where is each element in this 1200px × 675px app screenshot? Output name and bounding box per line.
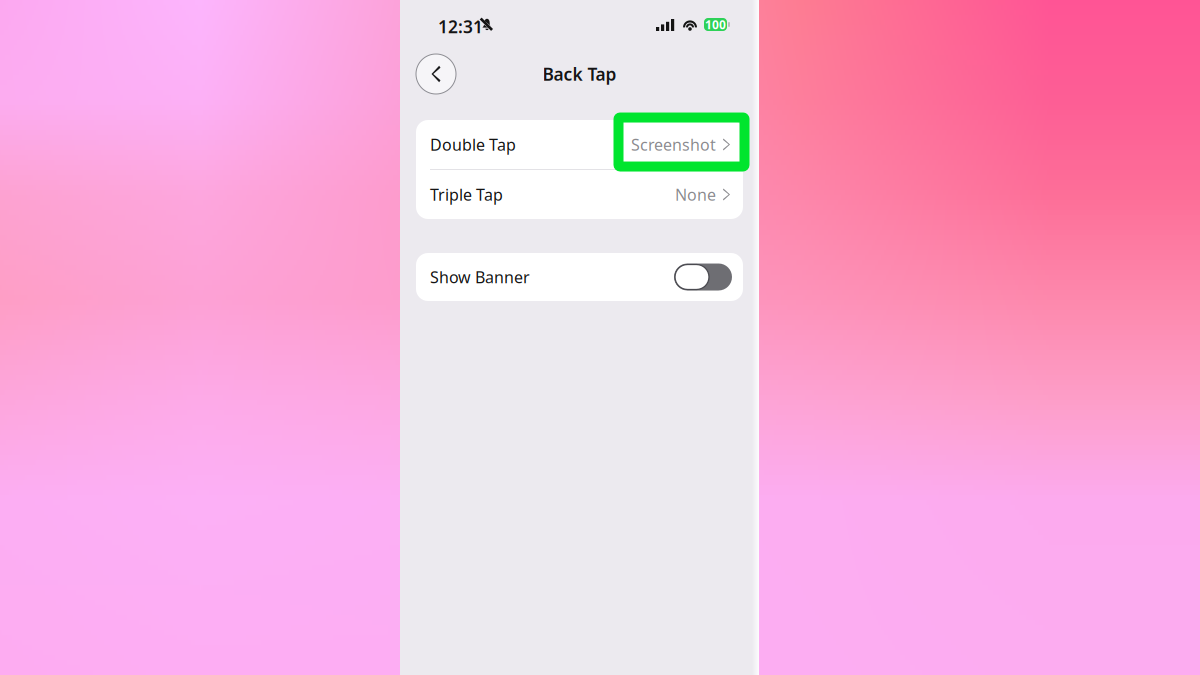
staticText: 12:31 (438, 15, 483, 38)
staticText: Double Tap (430, 134, 516, 155)
staticText: Triple Tap (430, 184, 503, 205)
button[interactable]: Show Banner (416, 253, 743, 301)
staticText: Screenshot (631, 134, 716, 155)
staticText: None (675, 184, 716, 205)
staticText: 100 (705, 16, 726, 32)
button[interactable]: Back (416, 54, 456, 94)
staticText: Back Tap (542, 62, 616, 85)
button[interactable]: Triple Tap (416, 170, 743, 219)
button[interactable]: Double Tap (416, 120, 743, 169)
staticText: Show Banner (430, 266, 530, 288)
